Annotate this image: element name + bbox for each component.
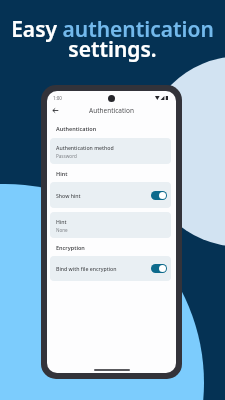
- button[interactable]: Bind with file encryption: [50, 256, 171, 281]
- button[interactable]: Show hint: [50, 182, 171, 208]
- staticText: Hint: [56, 218, 67, 225]
- staticText: Authentication method: [56, 144, 114, 151]
- staticText: None: [56, 227, 68, 233]
- staticText: Easy authentication settings.: [0, 15, 225, 63]
- staticText: Encryption: [56, 244, 85, 251]
- staticText: Bind with file encryption: [56, 265, 151, 272]
- staticText: Hint: [56, 170, 68, 177]
- staticText: Password: [56, 153, 77, 159]
- staticText: Authentication: [89, 106, 134, 115]
- staticText: Show hint: [56, 192, 151, 199]
- button[interactable]: Back: [47, 102, 63, 118]
- staticText: 1:00: [53, 95, 62, 101]
- button[interactable]: Authentication method: [50, 138, 171, 164]
- button[interactable]: Hint: [50, 212, 171, 238]
- staticText: Authentication: [56, 125, 97, 132]
